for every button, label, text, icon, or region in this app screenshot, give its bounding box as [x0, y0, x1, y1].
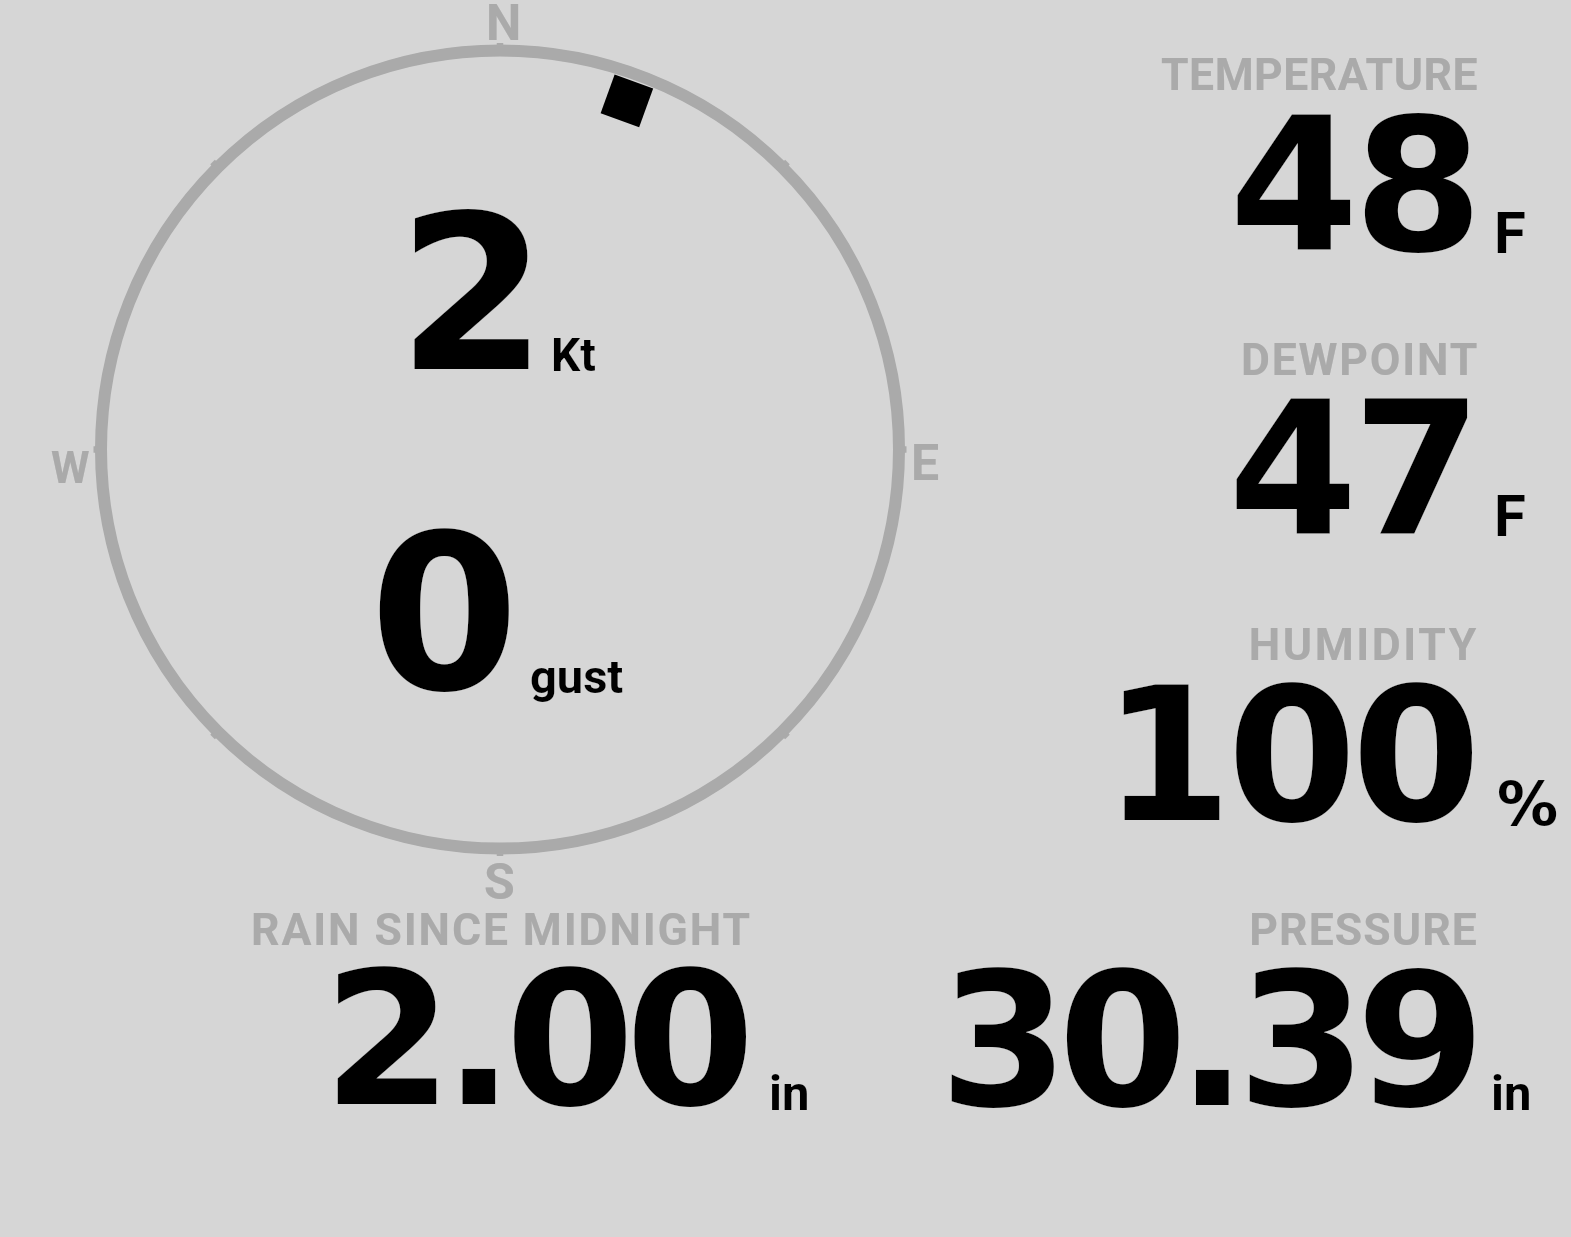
staticText: TEMPERATURE: [778, 49, 1478, 101]
staticText: in: [1491, 1065, 1532, 1122]
staticText: 0: [0, 489, 519, 739]
staticText: in: [769, 1065, 810, 1122]
staticText: Kt: [551, 328, 596, 382]
staticText: PRESSURE: [778, 904, 1478, 956]
staticText: RAIN SINCE MIDNIGHT: [52, 904, 752, 956]
staticText: 47: [577, 361, 1477, 578]
staticText: 48: [578, 77, 1478, 294]
button[interactable]: Wind direction compass: [0, 0, 1571, 1237]
staticText: 30.39: [575, 932, 1475, 1149]
staticText: %: [658, 768, 1558, 839]
staticText: W: [51, 442, 90, 494]
staticText: 2: [0, 169, 547, 419]
staticText: E: [911, 434, 940, 493]
staticText: S: [484, 853, 515, 912]
staticText: F: [1494, 199, 1526, 267]
staticText: N: [486, 0, 522, 53]
staticText: 2.00: [0, 931, 746, 1148]
staticText: HUMIDITY: [779, 619, 1479, 671]
staticText: F: [1494, 482, 1526, 550]
staticText: gust: [530, 649, 624, 704]
staticText: 100: [576, 647, 1476, 864]
staticText: DEWPOINT: [779, 334, 1479, 386]
